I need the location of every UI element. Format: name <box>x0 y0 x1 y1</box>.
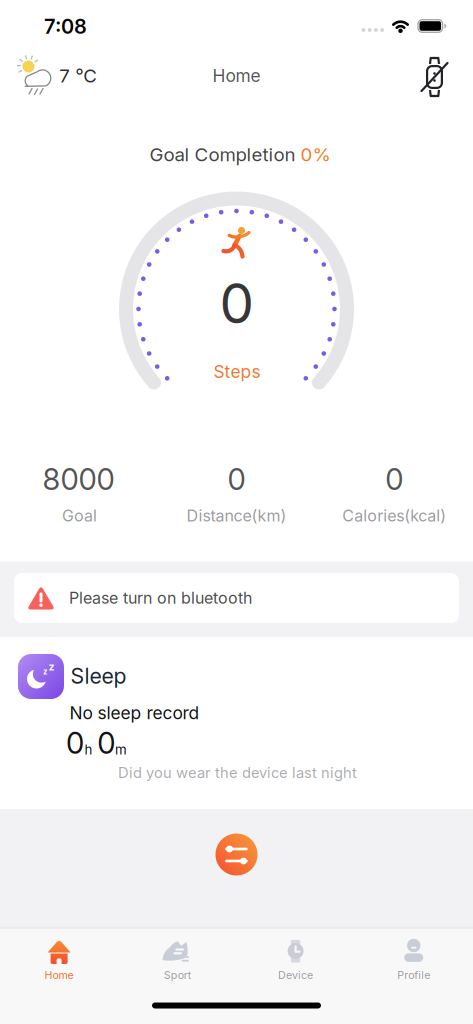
button[interactable]: Device <box>236 928 355 990</box>
staticText: 0 <box>227 462 245 497</box>
staticText: Calories(kcal) <box>342 506 446 525</box>
staticText: Home <box>45 969 74 981</box>
staticText: Distance(km) <box>186 506 286 525</box>
staticText: Profile <box>397 969 430 981</box>
staticText: Steps <box>213 361 260 382</box>
staticText: 7:08 <box>44 15 87 38</box>
button[interactable] <box>414 55 454 99</box>
staticText: 0 <box>219 271 253 336</box>
staticText: Sleep <box>70 663 126 689</box>
staticText: Did you wear the device last night <box>118 764 357 781</box>
staticText: Goal <box>62 506 97 525</box>
staticText: 0 <box>385 462 403 497</box>
staticText: m <box>115 742 127 758</box>
staticText: Goal Completion <box>149 143 295 165</box>
button[interactable]: Please turn on bluetooth <box>14 573 459 623</box>
button[interactable]: Sport <box>118 928 236 990</box>
staticText: z <box>43 667 48 676</box>
staticText: Sport <box>164 969 191 981</box>
button[interactable] <box>215 833 257 875</box>
staticText: z <box>48 660 54 673</box>
staticText: 7 °C <box>59 65 97 87</box>
staticText: Please turn on bluetooth <box>69 589 252 607</box>
staticText: 0% <box>300 143 330 165</box>
staticText: 0 <box>97 726 115 760</box>
staticText: 0 <box>66 726 84 760</box>
staticText: Device <box>278 969 313 981</box>
staticText: h <box>85 742 93 758</box>
staticText: No sleep record <box>69 703 199 723</box>
button[interactable]: z <box>0 637 473 809</box>
button[interactable]: Profile <box>355 928 473 990</box>
button[interactable]: Home <box>0 928 118 990</box>
staticText: Home <box>212 66 260 86</box>
staticText: 8000 <box>42 462 114 497</box>
